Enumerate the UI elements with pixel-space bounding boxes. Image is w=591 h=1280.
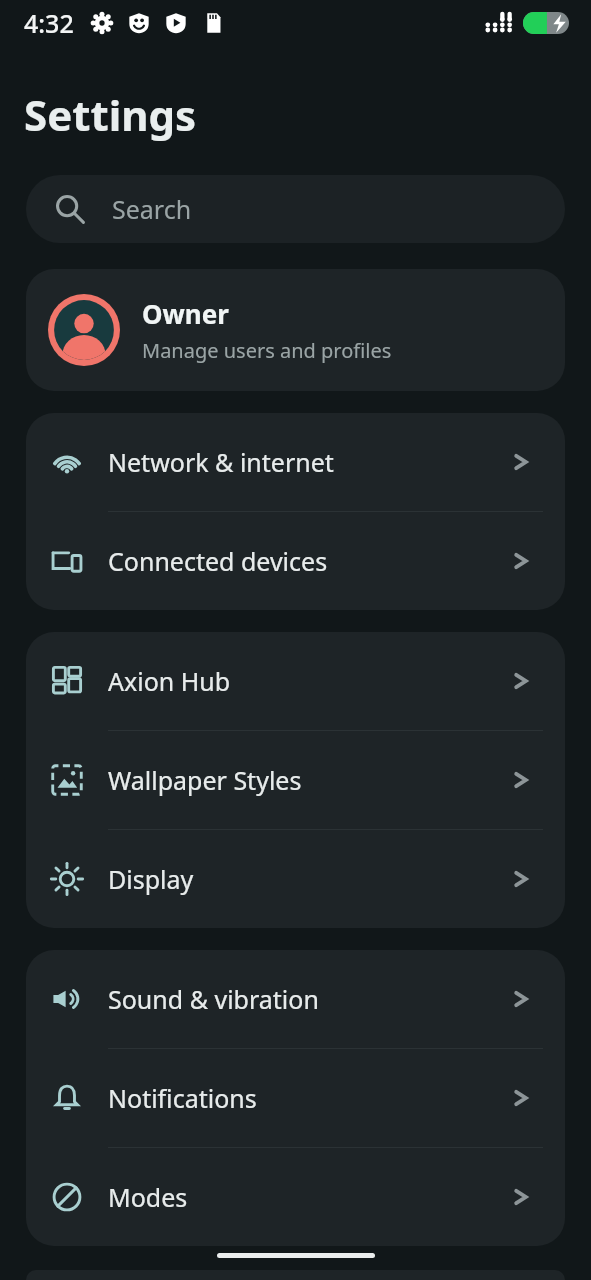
- staticText: Manage users and profiles: [142, 337, 392, 364]
- staticText: Connected devices: [108, 544, 509, 578]
- staticText: 4:32: [24, 6, 74, 40]
- staticText: Notifications: [108, 1081, 509, 1115]
- button[interactable]: Wallpaper Styles: [26, 731, 565, 829]
- button[interactable]: Search: [26, 175, 565, 243]
- button[interactable]: Display: [26, 830, 565, 928]
- staticText: Sound & vibration: [108, 982, 509, 1016]
- button[interactable]: Connected devices: [26, 512, 565, 610]
- button[interactable]: Axion Hub: [26, 632, 565, 730]
- staticText: Axion Hub: [108, 664, 509, 698]
- staticText: Modes: [108, 1180, 509, 1214]
- staticText: Owner: [142, 296, 229, 331]
- staticText: Network & internet: [108, 445, 509, 479]
- button[interactable]: Modes: [26, 1148, 565, 1246]
- staticText: Search: [112, 192, 192, 226]
- button[interactable]: Notifications: [26, 1049, 565, 1147]
- staticText: Settings: [24, 86, 197, 143]
- button[interactable]: Network & internet: [26, 413, 565, 511]
- staticText: Wallpaper Styles: [108, 763, 509, 797]
- button[interactable]: Owner: [26, 269, 565, 391]
- button[interactable]: Sound & vibration: [26, 950, 565, 1048]
- staticText: Display: [108, 862, 509, 896]
